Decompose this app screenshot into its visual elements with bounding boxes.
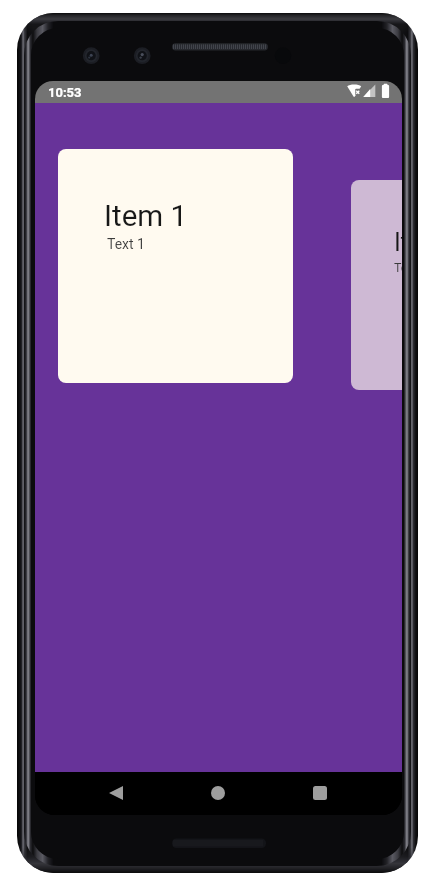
button[interactable]: Back: [92, 771, 140, 814]
button[interactable]: Item 1: [58, 149, 293, 383]
staticText: Text 1: [107, 236, 145, 252]
staticText: Item 1: [104, 199, 188, 234]
button[interactable]: Recent apps: [296, 771, 344, 814]
button[interactable]: Home: [194, 771, 242, 814]
staticText: Text 2: [394, 260, 402, 275]
button[interactable]: Item 2: [351, 180, 402, 390]
staticText: Item 2: [394, 228, 402, 257]
staticText: 10:53: [48, 85, 82, 100]
